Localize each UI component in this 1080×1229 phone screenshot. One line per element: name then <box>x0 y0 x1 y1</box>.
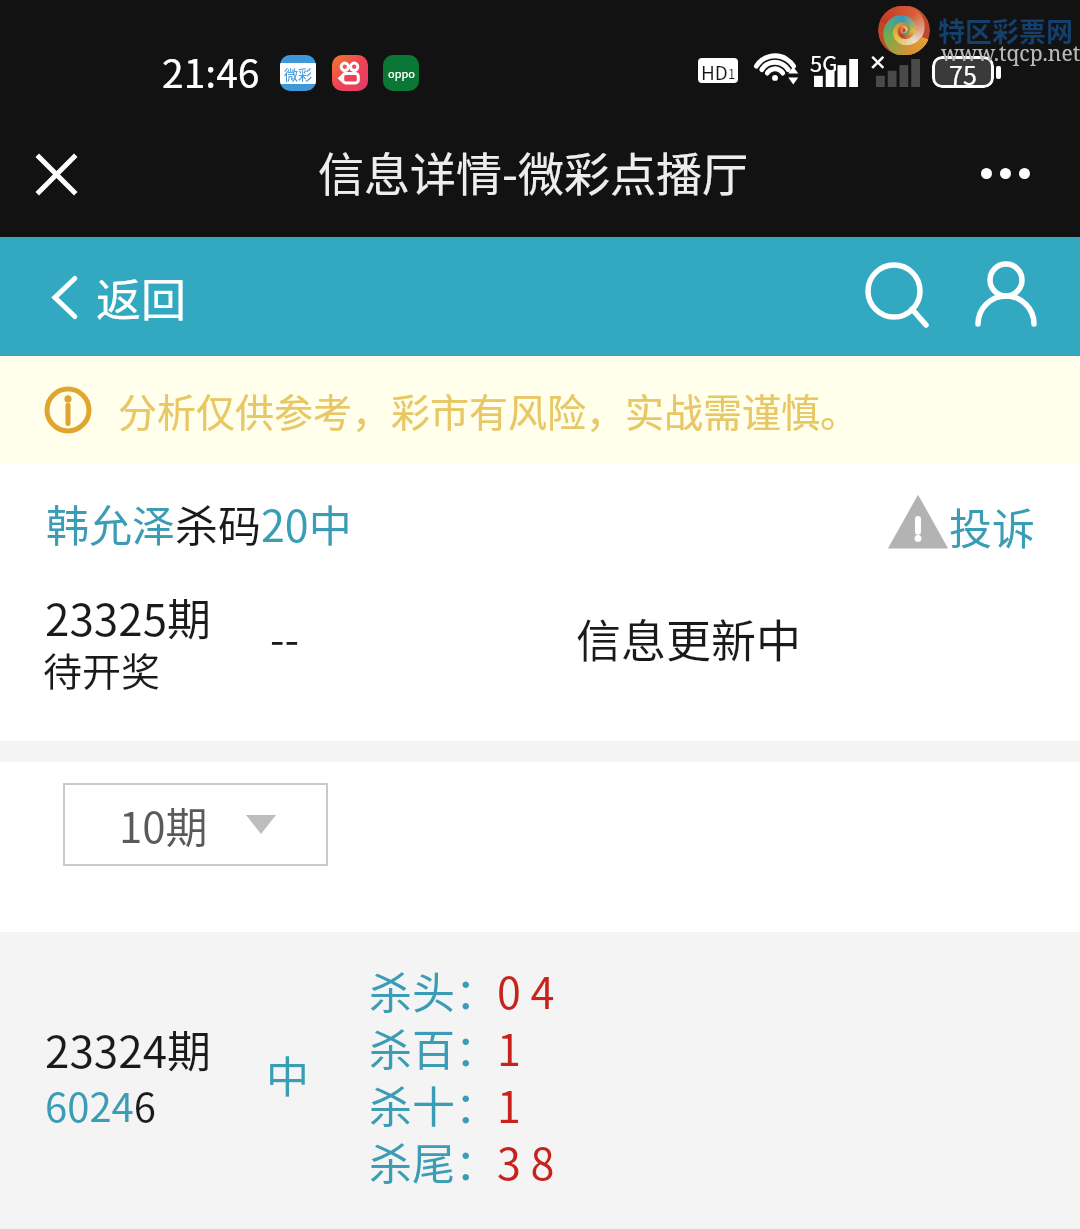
button[interactable]: Close <box>21 139 91 209</box>
button[interactable]: 投诉 <box>885 495 1041 553</box>
button[interactable]: 23324期 开奖详情 <box>0 932 1080 1229</box>
staticText: 21:46 <box>162 43 260 99</box>
staticText: 1 <box>497 1016 521 1078</box>
staticText: oppo <box>388 65 415 81</box>
staticText: 23325期 <box>45 585 212 649</box>
staticText: 信息详情-微彩点播厅 <box>318 138 748 205</box>
staticText: 10期 <box>119 794 208 855</box>
staticText: 杀十： <box>369 1073 498 1135</box>
staticText: -- <box>270 606 300 667</box>
staticText: ✕ <box>869 51 887 75</box>
staticText: 75 <box>949 56 977 88</box>
button[interactable]: 23325期 待开奖 信息更新中 <box>0 575 1080 715</box>
staticText: 23324期 <box>45 1017 212 1081</box>
staticText: 1 <box>497 1073 521 1135</box>
button[interactable]: 10期 <box>63 783 328 866</box>
button[interactable]: 返回 <box>48 262 191 332</box>
staticText: 特区彩票网 <box>938 11 1073 50</box>
staticText: 投诉 <box>949 495 1035 553</box>
staticText: 微彩 <box>284 64 312 84</box>
staticText: 5G <box>810 46 838 78</box>
staticText: 信息更新中 <box>576 606 802 671</box>
staticText: www.tqcp.net <box>941 39 1080 68</box>
staticText: 分析仅供参考，彩市有风险，实战需谨慎。 <box>118 382 860 438</box>
staticText: 杀百： <box>369 1016 498 1078</box>
staticText: 返回 <box>96 265 187 330</box>
staticText: 中 <box>266 1043 309 1105</box>
staticText: 杀头： <box>369 959 498 1021</box>
staticText: 1 <box>728 64 736 83</box>
button[interactable]: Search <box>855 252 939 336</box>
button[interactable]: Profile <box>965 252 1049 336</box>
staticText: 韩允泽杀码20中 <box>46 492 352 554</box>
staticText: 0 4 <box>497 959 555 1021</box>
staticText: 杀尾： <box>369 1130 498 1192</box>
button[interactable]: More options <box>966 142 1044 204</box>
staticText: HD <box>701 58 728 83</box>
staticText: 60246 <box>45 1076 156 1134</box>
staticText: 3 8 <box>497 1130 555 1192</box>
staticText: 待开奖 <box>43 641 161 697</box>
